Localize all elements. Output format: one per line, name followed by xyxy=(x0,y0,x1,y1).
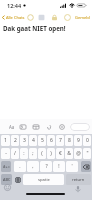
button[interactable]: 9 xyxy=(74,135,82,146)
button[interactable]: ! xyxy=(53,161,65,172)
button[interactable]: ) xyxy=(47,148,55,159)
staticText: 4 xyxy=(32,137,35,144)
button[interactable]: " xyxy=(83,148,91,159)
staticText: spatie xyxy=(38,177,50,183)
staticText: 12:44 xyxy=(7,2,22,9)
button[interactable]: Alle Chats xyxy=(1,13,26,22)
button[interactable]: / xyxy=(11,148,19,159)
staticText: & xyxy=(67,150,71,157)
button[interactable]: - xyxy=(1,148,10,159)
button[interactable]: Photos xyxy=(18,122,27,131)
button[interactable]: Dictation xyxy=(74,185,82,193)
staticText: 8 xyxy=(68,137,71,144)
staticText: ) xyxy=(50,150,52,157)
staticText: 0 xyxy=(86,137,89,144)
button[interactable]: 8 xyxy=(65,135,73,146)
button[interactable]: Aa xyxy=(8,123,16,131)
staticText: . xyxy=(19,163,21,170)
button[interactable]: return xyxy=(66,174,91,185)
staticText: 5 xyxy=(41,137,44,144)
staticText: " xyxy=(86,150,89,157)
button[interactable]: Apps xyxy=(31,122,40,131)
staticText: € xyxy=(59,150,62,157)
button[interactable]: , xyxy=(27,161,39,172)
button[interactable]: Delete xyxy=(81,161,91,172)
staticText: 2 xyxy=(14,137,17,144)
button[interactable]: 3 xyxy=(20,135,28,146)
button[interactable]: ABC xyxy=(1,174,12,185)
staticText: Alle Chats xyxy=(6,15,25,20)
button[interactable]: & xyxy=(65,148,73,159)
button[interactable]: 2 xyxy=(11,135,19,146)
staticText: - xyxy=(5,150,7,157)
staticText: 6 xyxy=(50,137,53,144)
staticText: Gemeld xyxy=(75,15,90,20)
button[interactable]: Lock xyxy=(51,14,58,21)
staticText: / xyxy=(14,150,16,157)
staticText: #+= xyxy=(3,164,10,169)
staticText: Dak gaat NIET open! xyxy=(3,24,66,32)
staticText: 3 xyxy=(23,137,26,144)
staticText: 1 xyxy=(4,137,7,144)
button[interactable] xyxy=(70,123,90,131)
staticText: Aa xyxy=(9,124,15,130)
staticText: 7 xyxy=(59,137,62,144)
button[interactable]: ? xyxy=(40,161,52,172)
button[interactable]: Audio xyxy=(57,122,66,131)
button[interactable]: ' xyxy=(66,161,78,172)
button[interactable]: 7 xyxy=(56,135,64,146)
staticText: , xyxy=(32,163,34,170)
staticText: ' xyxy=(71,163,73,170)
button[interactable]: € xyxy=(56,148,64,159)
button[interactable]: 4 xyxy=(29,135,37,146)
button[interactable]: Emoji xyxy=(4,184,11,191)
button[interactable]: : xyxy=(20,148,28,159)
staticText: ABC xyxy=(3,177,11,182)
staticText: : xyxy=(23,150,25,157)
button[interactable]: Profile xyxy=(64,14,71,21)
button[interactable]: #+= xyxy=(1,161,11,172)
staticText: 9 xyxy=(77,137,80,144)
button[interactable]: spatie xyxy=(23,174,64,185)
button[interactable]: . xyxy=(14,161,26,172)
button[interactable]: Attach xyxy=(44,122,53,131)
staticText: @ xyxy=(76,150,81,157)
button[interactable]: Gemeld xyxy=(74,13,91,22)
staticText: ? xyxy=(45,163,48,170)
staticText: ! xyxy=(58,163,60,170)
staticText: return xyxy=(72,177,85,183)
button[interactable]: @ xyxy=(74,148,82,159)
staticText: ( xyxy=(41,150,43,157)
button[interactable]: 6 xyxy=(47,135,55,146)
button[interactable]: ( xyxy=(38,148,46,159)
button[interactable]: 5 xyxy=(38,135,46,146)
button[interactable]: 0 xyxy=(83,135,91,146)
button[interactable]: Photo xyxy=(38,14,45,21)
staticText: ; xyxy=(32,150,34,157)
button[interactable]: Star xyxy=(27,14,34,21)
button[interactable]: 1 xyxy=(1,135,10,146)
button[interactable]: Next keyboard xyxy=(13,174,22,185)
button[interactable]: ; xyxy=(29,148,37,159)
